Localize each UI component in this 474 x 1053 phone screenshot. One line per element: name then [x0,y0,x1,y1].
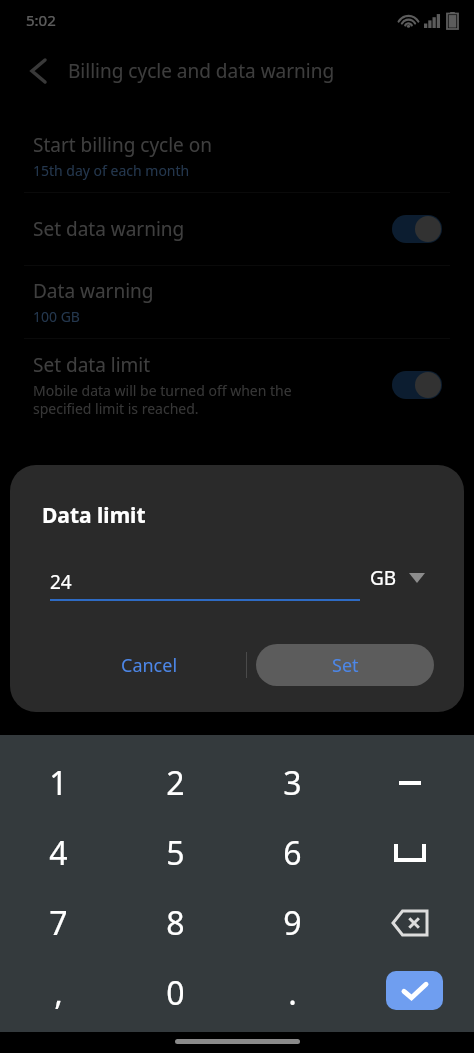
staticText: Set [332,653,359,678]
staticText: Cancel [121,653,178,678]
button[interactable]: Back [22,55,54,87]
staticText: Set data warning [33,216,185,242]
button[interactable]: Backspace [351,888,468,958]
button[interactable]: 7 [0,888,117,958]
staticText: 7 [49,901,68,945]
button[interactable]: , [0,958,117,1028]
staticText: 100 GB [33,307,80,326]
staticText: 9 [283,901,302,945]
staticText: 1 [49,761,68,805]
button[interactable]: Space [351,818,468,888]
button[interactable]: 2 [117,748,234,818]
button[interactable]: Set data warning [0,193,474,265]
staticText: 24 [50,569,72,595]
staticText: 2 [166,761,185,805]
button[interactable]: 0 [117,958,234,1028]
button[interactable]: 4 [0,818,117,888]
button[interactable]: 3 [234,748,351,818]
button[interactable]: Cancel [92,644,206,686]
staticText: Mobile data will be turned off when the … [33,381,292,418]
staticText: Data limit [42,501,146,530]
button[interactable]: 5 [117,818,234,888]
button[interactable]: 1 [0,748,117,818]
staticText: GB [370,565,397,591]
staticText: Data warning [33,278,154,304]
staticText: Billing cycle and data warning [68,58,335,84]
button[interactable]: 8 [117,888,234,958]
button[interactable]: 9 [234,888,351,958]
staticText: . [288,971,297,1015]
staticText: 0 [166,971,185,1015]
staticText: 15th day of each month [33,161,190,180]
staticText: Start billing cycle on [33,132,212,158]
button[interactable]: Minus [351,748,468,818]
staticText: Set data limit [33,352,151,378]
button[interactable]: 6 [234,818,351,888]
button[interactable]: GB [370,565,425,591]
staticText: , [54,971,63,1015]
button[interactable]: Start billing cycle on [0,120,474,192]
button[interactable]: . [234,958,351,1028]
staticText: 3 [283,761,302,805]
button[interactable]: Data warning [0,266,474,338]
staticText: 5:02 [26,10,56,30]
button[interactable]: Toggle [392,215,442,243]
button[interactable]: Set [256,644,434,686]
staticText: 8 [166,901,185,945]
staticText: 6 [283,831,302,875]
staticText: 4 [49,831,68,875]
button[interactable]: Set data limit [0,339,474,431]
button[interactable]: Toggle [392,371,442,399]
button[interactable]: Confirm [386,971,443,1010]
staticText: 5 [166,831,185,875]
